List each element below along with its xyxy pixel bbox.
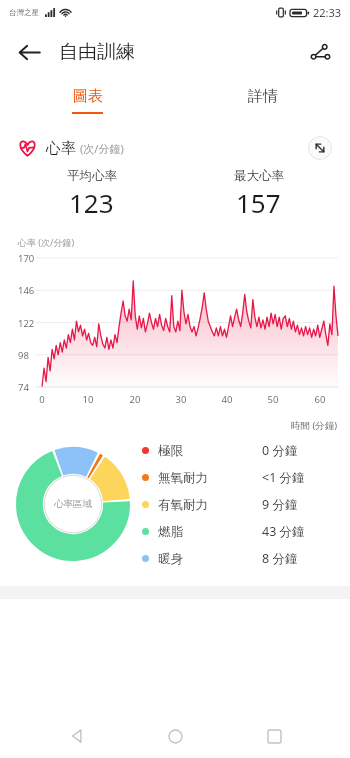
staticText: 123: [69, 185, 114, 220]
staticText: 心率 (次/分鐘): [18, 236, 75, 248]
staticText: 最大心率: [234, 168, 284, 184]
staticText: 0: [33, 393, 51, 406]
staticText: 極限: [158, 443, 183, 459]
staticText: 圖表: [73, 87, 103, 106]
staticText: 157: [236, 185, 281, 220]
staticText: 50: [264, 393, 282, 406]
button[interactable]: Home: [153, 714, 197, 758]
staticText: 時間 (分鐘): [291, 419, 338, 432]
button[interactable]: Share: [299, 31, 341, 73]
staticText: 8 分鐘: [262, 550, 298, 567]
staticText: 20: [126, 393, 144, 406]
staticText: 平均心率: [67, 168, 117, 184]
staticText: 燃脂: [158, 524, 183, 540]
staticText: 0 分鐘: [262, 442, 298, 459]
staticText: 40: [218, 393, 236, 406]
staticText: 9 分鐘: [262, 496, 298, 513]
staticText: 98: [18, 349, 29, 362]
staticText: 10: [79, 393, 97, 406]
staticText: 60: [311, 393, 329, 406]
staticText: 暖身: [158, 551, 183, 567]
staticText: 146: [18, 284, 35, 297]
staticText: <1 分鐘: [262, 469, 305, 486]
button[interactable]: 圖表: [0, 80, 175, 120]
staticText: 74: [18, 381, 29, 394]
button[interactable]: Expand chart: [308, 136, 332, 160]
staticText: (次/分鐘): [80, 141, 124, 156]
staticText: 台灣之星: [9, 8, 39, 17]
staticText: 無氧耐力: [158, 470, 208, 486]
staticText: 43 分鐘: [262, 523, 305, 540]
staticText: 自由訓練: [59, 40, 135, 64]
button[interactable]: Recents: [252, 714, 296, 758]
staticText: 30: [172, 393, 190, 406]
staticText: 心率區域: [54, 498, 92, 510]
staticText: 有氧耐力: [158, 497, 208, 513]
button[interactable]: 詳情: [175, 80, 350, 120]
button[interactable]: Back: [8, 31, 50, 73]
staticText: 170: [18, 252, 35, 265]
button[interactable]: Back: [55, 714, 99, 758]
staticText: 心率: [46, 139, 76, 158]
staticText: 詳情: [248, 87, 278, 106]
staticText: 122: [18, 317, 35, 330]
staticText: 22:33: [313, 5, 342, 20]
